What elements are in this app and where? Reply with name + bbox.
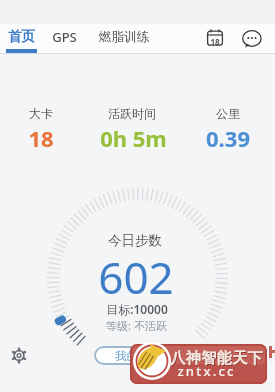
staticText: 目标:10000 — [106, 301, 168, 317]
staticText: 大卡 — [29, 106, 53, 121]
staticText: 18 — [28, 123, 54, 153]
staticText: 今日步数 — [108, 232, 162, 249]
staticText: 0.39 — [206, 123, 250, 153]
staticText: 公里 — [216, 106, 240, 121]
staticText: 0h 5m — [100, 123, 167, 153]
staticText: 活跃时间 — [108, 106, 156, 121]
staticText: zntx.cc — [177, 362, 236, 380]
staticText: 等级: 不活跃 — [106, 318, 167, 333]
staticText: 18 — [210, 36, 220, 47]
staticText: 602 — [98, 247, 174, 301]
staticText: 燃脂训练 — [98, 29, 150, 45]
staticText: GPS — [52, 28, 77, 46]
staticText: 首页 — [8, 28, 35, 45]
staticText: 我的成就 — [115, 349, 161, 363]
staticText: 八神智能天下 — [170, 349, 263, 368]
staticText: 八神智能天下 — [171, 350, 264, 369]
